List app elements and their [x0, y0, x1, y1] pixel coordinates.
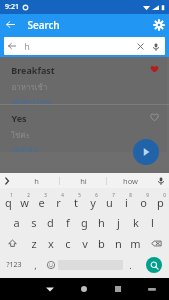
staticText: 4 — [61, 192, 64, 198]
button[interactable]: Back — [4, 38, 20, 54]
staticText: ?123 — [6, 260, 22, 270]
button[interactable]: b — [93, 233, 110, 254]
button[interactable]: Remove favourite — [147, 61, 161, 75]
staticText: x — [48, 236, 54, 251]
staticText: o — [140, 195, 147, 210]
button[interactable]: More suggestions — [0, 173, 14, 188]
button[interactable]: 4 — [50, 191, 67, 212]
button[interactable]: 1 — [0, 191, 16, 212]
button[interactable]: Add favourite — [147, 109, 161, 123]
staticText: 1 — [10, 192, 13, 198]
staticText: 5 — [78, 192, 81, 198]
button[interactable]: Breakfast — [0, 57, 167, 104]
staticText: อาหารเช้า — [11, 81, 48, 94]
staticText: i — [125, 195, 128, 210]
staticText: r — [56, 195, 61, 210]
button[interactable]: 9 — [135, 191, 152, 212]
button[interactable]: hi — [60, 173, 106, 188]
button[interactable]: Play — [133, 139, 159, 165]
button[interactable]: Home — [67, 278, 101, 300]
button[interactable]: Back — [33, 278, 67, 300]
button[interactable]: j — [110, 212, 127, 233]
button[interactable]: Search — [146, 257, 162, 273]
button[interactable]: n — [110, 233, 127, 254]
staticText: b — [98, 236, 105, 251]
button[interactable]: m — [127, 233, 144, 254]
staticText: 3 — [44, 192, 47, 198]
staticText: w — [20, 195, 29, 210]
staticText: 2 — [27, 192, 30, 198]
button[interactable]: d — [42, 212, 59, 233]
button[interactable]: a — [8, 212, 25, 233]
button[interactable]: s — [25, 212, 42, 233]
staticText: k — [133, 215, 139, 230]
staticText: 7 — [112, 192, 115, 198]
button[interactable]: 0 — [152, 191, 169, 212]
button[interactable]: Settings — [148, 14, 169, 35]
button[interactable]: . — [123, 254, 138, 276]
staticText: chai-ka — [11, 144, 38, 152]
button[interactable]: c — [59, 233, 76, 254]
staticText: Yes — [11, 112, 27, 124]
staticText: ใช่ค่ะ — [11, 129, 30, 142]
staticText: q — [5, 195, 12, 210]
button[interactable]: Emoji — [43, 254, 58, 276]
button[interactable]: h — [14, 173, 59, 188]
button[interactable]: Voice search — [148, 39, 163, 54]
button[interactable]: , — [28, 254, 43, 276]
staticText: f — [66, 215, 70, 230]
staticText: 0 — [163, 192, 166, 198]
staticText: . — [129, 259, 132, 271]
staticText: a — [13, 215, 20, 230]
button[interactable]: k — [127, 212, 144, 233]
button[interactable]: v — [76, 233, 93, 254]
button[interactable]: Change keyboard — [135, 278, 169, 300]
button[interactable]: Back — [4, 37, 165, 55]
staticText: p — [157, 195, 164, 210]
button[interactable]: f — [59, 212, 76, 233]
button[interactable]: 3 — [33, 191, 50, 212]
staticText: y — [90, 195, 96, 210]
staticText: d — [47, 215, 54, 230]
staticText: g — [81, 215, 88, 230]
button[interactable]: Voice input — [153, 173, 169, 188]
button[interactable]: z — [25, 233, 42, 254]
button[interactable]: l — [144, 212, 161, 233]
button[interactable]: 2 — [16, 191, 33, 212]
staticText: c — [65, 236, 71, 251]
button[interactable]: 7 — [101, 191, 118, 212]
staticText: h — [98, 215, 105, 230]
staticText: j — [117, 215, 120, 230]
button[interactable]: Back — [0, 14, 21, 35]
staticText: n — [115, 236, 122, 251]
staticText: hi — [80, 176, 87, 186]
staticText: Breakfast — [11, 64, 55, 76]
staticText: 9:21 — [5, 2, 19, 12]
staticText: 8 — [129, 192, 132, 198]
button[interactable]: 6 — [84, 191, 101, 212]
staticText: , — [34, 259, 37, 271]
staticText: t — [74, 195, 78, 210]
staticText: 6 — [95, 192, 98, 198]
button[interactable]: Clear — [133, 39, 148, 54]
button[interactable]: ?123 — [0, 254, 28, 276]
button[interactable]: Shift — [0, 233, 25, 254]
staticText: u — [106, 195, 113, 210]
button[interactable]: h — [93, 212, 110, 233]
button[interactable]: 8 — [118, 191, 135, 212]
staticText: h — [24, 40, 30, 52]
staticText: Search — [27, 18, 60, 32]
button[interactable]: x — [42, 233, 59, 254]
staticText: s — [31, 215, 37, 230]
button[interactable]: 5 — [67, 191, 84, 212]
staticText: m — [130, 236, 141, 251]
button[interactable]: how — [107, 173, 153, 188]
button[interactable]: Backspace — [144, 233, 169, 254]
staticText: h — [34, 176, 39, 186]
staticText: z — [31, 236, 37, 251]
button[interactable]: Recents — [101, 278, 135, 300]
button[interactable]: Yes — [0, 105, 167, 152]
button[interactable]: g — [76, 212, 93, 233]
staticText: 9 — [146, 192, 149, 198]
